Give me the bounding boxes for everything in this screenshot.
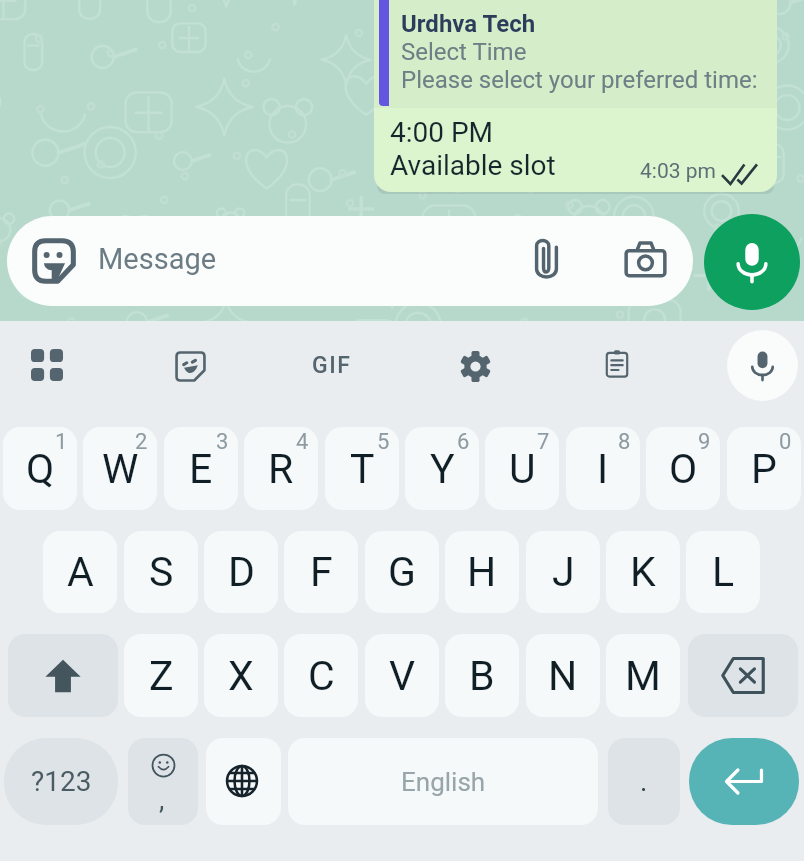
- button[interactable]: T: [325, 427, 399, 510]
- button[interactable]: M: [606, 634, 680, 717]
- button[interactable]: V: [365, 634, 439, 717]
- staticText: H: [467, 548, 497, 596]
- button[interactable]: H: [445, 531, 519, 613]
- staticText: O: [669, 445, 698, 493]
- button[interactable]: Emoji: [7, 216, 693, 306]
- staticText: 8: [618, 429, 631, 455]
- button[interactable]: Stickers: [150, 326, 230, 406]
- other: Camera: [624, 240, 667, 278]
- button[interactable]: Settings: [435, 326, 515, 406]
- staticText: ,: [159, 784, 165, 816]
- staticText: K: [630, 548, 656, 596]
- button[interactable]: S: [124, 531, 198, 613]
- staticText: Urdhva Tech: [401, 10, 536, 38]
- staticText: X: [228, 652, 254, 700]
- staticText: ?123: [31, 765, 92, 798]
- staticText: Select Time: [401, 38, 527, 66]
- staticText: V: [389, 652, 416, 700]
- button[interactable]: B: [445, 634, 519, 717]
- button[interactable]: .: [608, 738, 680, 825]
- button[interactable]: Q: [3, 427, 77, 510]
- staticText: W: [102, 445, 139, 493]
- button[interactable]: Emoji keyboard: [128, 738, 198, 825]
- staticText: Y: [430, 445, 455, 493]
- button[interactable]: Z: [124, 634, 198, 717]
- staticText: Available slot: [390, 149, 556, 182]
- button[interactable]: R: [244, 427, 318, 510]
- staticText: U: [509, 445, 536, 493]
- button[interactable]: F: [284, 531, 358, 613]
- staticText: E: [189, 445, 213, 493]
- staticText: F: [310, 548, 333, 596]
- button[interactable]: L: [686, 531, 760, 613]
- staticText: I: [597, 445, 609, 493]
- staticText: 4: [296, 429, 309, 455]
- staticText: Q: [26, 445, 55, 493]
- staticText: N: [548, 652, 578, 700]
- staticText: 2: [135, 429, 148, 455]
- button[interactable]: Voice message: [704, 214, 800, 310]
- staticText: A: [67, 548, 94, 596]
- button[interactable]: X: [204, 634, 278, 717]
- button[interactable]: Voice input: [727, 330, 798, 401]
- staticText: English: [401, 767, 486, 797]
- button[interactable]: N: [526, 634, 600, 717]
- button[interactable]: G: [365, 531, 439, 613]
- staticText: J: [552, 548, 575, 596]
- staticText: Please select your preferred time:: [401, 66, 758, 94]
- button[interactable]: U: [485, 427, 559, 510]
- staticText: .: [640, 765, 648, 798]
- staticText: 4:00 PM: [390, 116, 494, 149]
- button[interactable]: Shift: [8, 634, 118, 717]
- button[interactable]: C: [284, 634, 358, 717]
- staticText: 6: [457, 429, 470, 455]
- staticText: Z: [149, 652, 174, 700]
- button[interactable]: GIF: [292, 325, 372, 405]
- other: Attach: [530, 237, 563, 281]
- button[interactable]: Apps: [7, 325, 87, 405]
- button[interactable]: K: [606, 531, 680, 613]
- button[interactable]: J: [526, 531, 600, 613]
- staticText: 3: [216, 429, 229, 455]
- staticText: GIF: [312, 352, 352, 379]
- button[interactable]: Enter: [689, 738, 799, 825]
- button[interactable]: Backspace: [688, 634, 798, 717]
- staticText: 4:03 pm: [640, 159, 716, 184]
- button[interactable]: A: [43, 531, 117, 613]
- staticText: R: [268, 445, 294, 493]
- staticText: Message: [98, 242, 217, 276]
- button[interactable]: O: [646, 427, 720, 510]
- staticText: C: [308, 652, 335, 700]
- button[interactable]: ?123: [4, 738, 118, 825]
- staticText: L: [712, 548, 735, 596]
- staticText: S: [149, 548, 174, 596]
- staticText: M: [625, 652, 661, 700]
- button[interactable]: Y: [405, 427, 479, 510]
- staticText: 9: [698, 429, 711, 455]
- button[interactable]: W: [83, 427, 157, 510]
- button[interactable]: Clipboard: [577, 324, 657, 404]
- button[interactable]: Change language: [206, 738, 281, 825]
- staticText: 0: [779, 429, 792, 455]
- staticText: P: [751, 445, 777, 493]
- button[interactable]: English: [288, 738, 598, 825]
- staticText: G: [388, 548, 416, 596]
- button[interactable]: E: [164, 427, 238, 510]
- staticText: D: [228, 548, 255, 596]
- button[interactable]: I: [566, 427, 640, 510]
- button[interactable]: P: [727, 427, 801, 510]
- staticText: 5: [377, 429, 390, 455]
- staticText: B: [469, 652, 495, 700]
- other: Emoji: [31, 238, 77, 284]
- staticText: 7: [537, 429, 550, 455]
- button[interactable]: D: [204, 531, 278, 613]
- staticText: 1: [55, 429, 68, 455]
- staticText: T: [350, 445, 375, 493]
